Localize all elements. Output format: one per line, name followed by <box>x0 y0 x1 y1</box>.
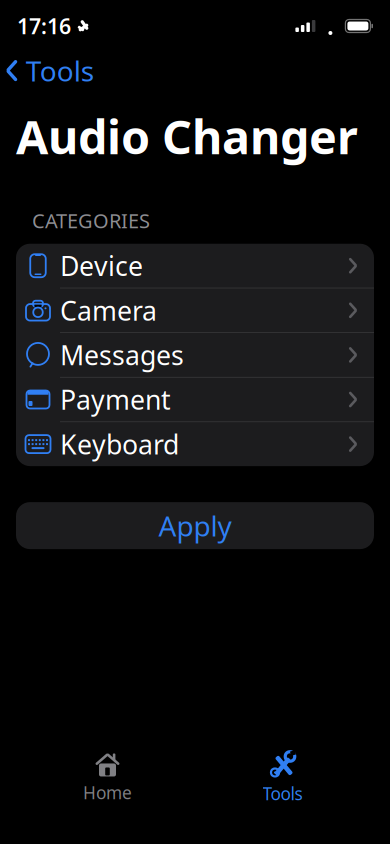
staticText: Device <box>60 248 143 283</box>
staticText: Apply <box>158 507 231 544</box>
button[interactable]: Home <box>20 747 195 809</box>
staticText: CATEGORIES <box>32 207 150 234</box>
button[interactable]: Payment <box>16 377 374 422</box>
button[interactable]: Tools <box>0 46 104 95</box>
staticText: Keyboard <box>60 426 179 462</box>
button[interactable]: Messages <box>16 333 374 377</box>
button[interactable]: Apply <box>16 502 374 549</box>
button[interactable]: Device <box>16 244 374 288</box>
button[interactable]: Keyboard <box>16 422 374 466</box>
staticText: Payment <box>60 382 171 417</box>
button[interactable]: Camera <box>16 288 374 333</box>
staticText: Tools <box>262 782 302 805</box>
button[interactable]: Tools <box>195 746 370 810</box>
staticText: Home <box>83 781 132 804</box>
staticText: 17:16 <box>17 12 71 40</box>
staticText: Camera <box>60 293 157 328</box>
staticText: Audio Changer <box>16 105 358 167</box>
staticText: Messages <box>60 337 184 373</box>
staticText: Tools <box>26 52 94 89</box>
